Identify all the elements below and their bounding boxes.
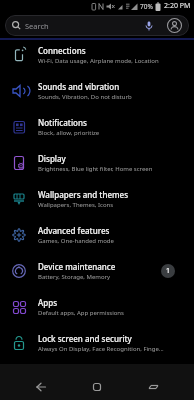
button[interactable] (80, 378, 114, 396)
staticText: Display (38, 153, 66, 164)
staticText: Search (25, 21, 49, 31)
button[interactable]: Display (0, 148, 194, 184)
button[interactable] (24, 378, 58, 396)
staticText: Wallpapers and themes (38, 189, 129, 200)
button[interactable]: Lock screen and security (0, 328, 194, 364)
button[interactable]: Connections (0, 40, 194, 76)
staticText: Advanced features (38, 225, 110, 236)
button[interactable] (144, 21, 154, 31)
button[interactable] (136, 378, 170, 396)
staticText: Default apps, App permissions (38, 309, 124, 317)
button[interactable] (167, 18, 182, 33)
staticText: Brightness, Blue light filter, Home scre… (38, 165, 153, 173)
staticText: Wallpapers, Themes, Icons (38, 201, 114, 209)
staticText: 2:20 PM (164, 1, 191, 11)
staticText: Sounds and vibration (38, 81, 120, 92)
staticText: Lock screen and security (38, 333, 132, 344)
button[interactable]: Wallpapers and themes (0, 184, 194, 220)
staticText: Always On Display, Face Recognition, Fin… (38, 345, 164, 353)
staticText: Wi-Fi, Data usage, Airplane mode, Locati… (38, 57, 159, 65)
staticText: Apps (38, 297, 58, 308)
staticText: Battery, Storage, Memory (38, 273, 111, 281)
staticText: Device maintenance (38, 261, 116, 272)
staticText: 70% (140, 2, 153, 11)
button[interactable]: Device maintenance (0, 256, 194, 292)
button[interactable]: Apps (0, 292, 194, 328)
staticText: Connections (38, 45, 86, 56)
button[interactable]: Sounds and vibration (0, 76, 194, 112)
button[interactable]: Advanced features (0, 220, 194, 256)
staticText: Sounds, Vibration, Do not disturb (38, 93, 132, 101)
staticText: Notifications (38, 117, 87, 128)
staticText: 1 (166, 266, 171, 276)
button[interactable]: Search (5, 15, 189, 36)
staticText: Games, One-handed mode (38, 237, 114, 245)
button[interactable]: Notifications (0, 112, 194, 148)
staticText: Block, allow, prioritize (38, 129, 100, 137)
